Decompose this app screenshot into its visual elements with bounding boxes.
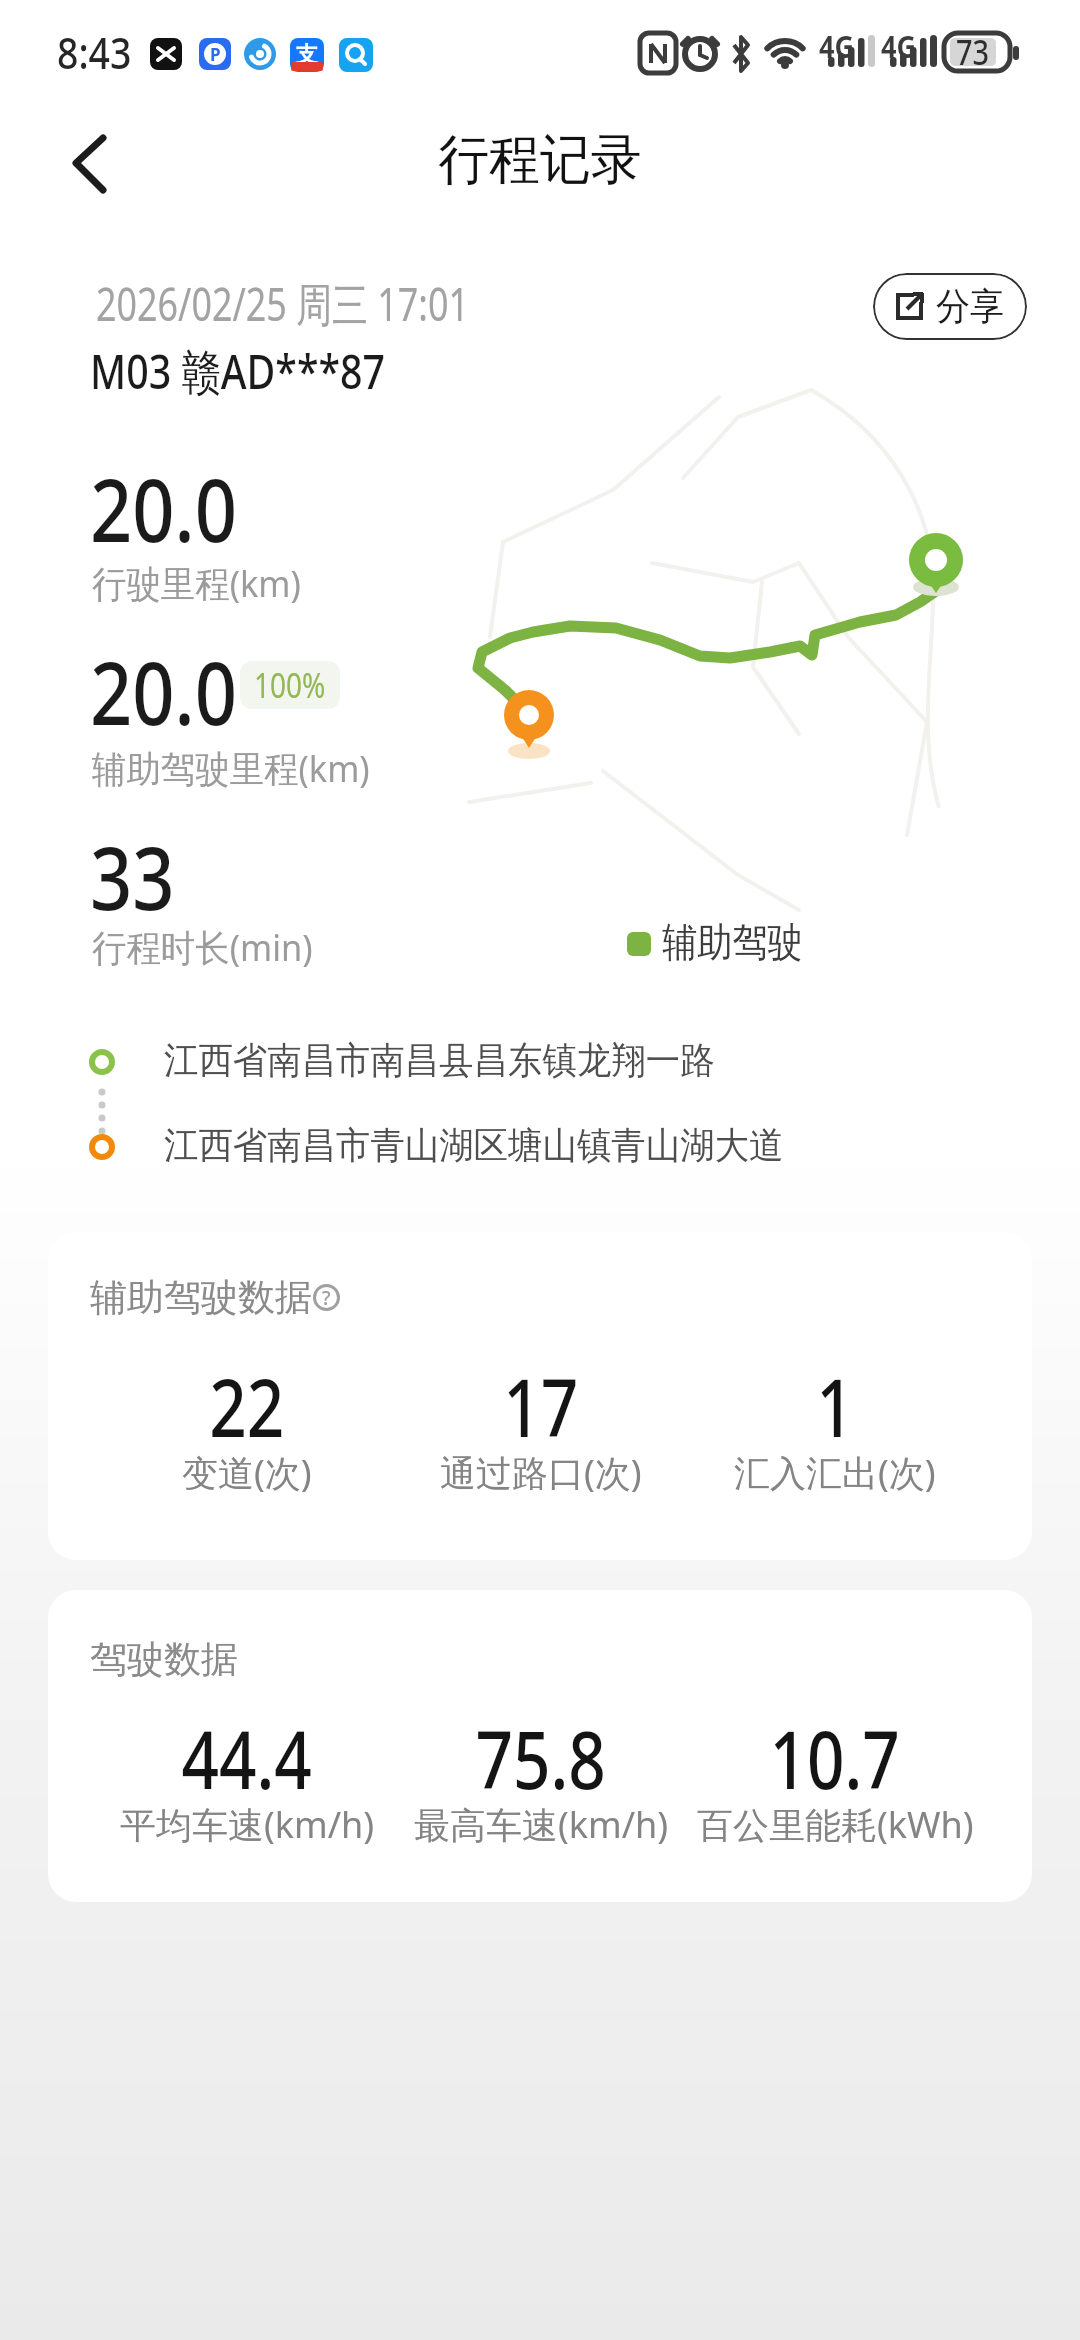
- staticText: 4G: [819, 26, 854, 67]
- staticText: ?: [322, 1285, 331, 1311]
- staticText: 8:43: [57, 22, 132, 82]
- staticText: 最高车速(km/h): [414, 1800, 669, 1849]
- staticText: 平均车速(km/h): [120, 1800, 375, 1849]
- staticText: M03 赣AD***87: [90, 338, 385, 404]
- staticText: 江西省南昌市南昌县昌东镇龙翔一路: [164, 1037, 715, 1084]
- button[interactable]: 分享: [873, 273, 1027, 340]
- staticText: 辅助驾驶数据: [90, 1274, 312, 1321]
- staticText: 变道(次): [182, 1448, 312, 1497]
- staticText: 2026/02/25 周三 17:01: [96, 272, 470, 335]
- staticText: 行驶里程(km): [92, 557, 301, 608]
- staticText: 行程时长(min): [92, 921, 313, 972]
- staticText: 10.7: [769, 1703, 901, 1812]
- staticText: 汇入汇出(次): [734, 1448, 936, 1497]
- staticText: 4G: [881, 26, 916, 67]
- staticText: 17: [503, 1351, 579, 1460]
- staticText: 支: [296, 41, 318, 69]
- staticText: 73: [956, 29, 989, 75]
- button[interactable]: 驾驶数据: [48, 1590, 1032, 1902]
- staticText: 辅助驾驶里程(km): [92, 742, 370, 793]
- button[interactable]: 辅助驾驶数据: [48, 1232, 1032, 1560]
- staticText: P: [210, 43, 221, 65]
- staticText: 1: [816, 1351, 854, 1460]
- staticText: 驾驶数据: [90, 1636, 238, 1683]
- staticText: 行程记录: [438, 126, 641, 194]
- staticText: 100%: [254, 661, 326, 709]
- staticText: 百公里能耗(kWh): [697, 1800, 974, 1849]
- staticText: 江西省南昌市青山湖区塘山镇青山湖大道: [164, 1122, 783, 1169]
- staticText: 33: [90, 816, 175, 936]
- staticText: 通过路口(次): [440, 1448, 642, 1497]
- staticText: 20.0: [90, 448, 237, 568]
- staticText: 辅助驾驶: [662, 917, 803, 967]
- staticText: 75.8: [475, 1703, 607, 1812]
- staticText: 20.0: [90, 631, 237, 751]
- staticText: 44.4: [181, 1703, 313, 1812]
- staticText: 分享: [936, 283, 1004, 330]
- staticText: 22: [209, 1351, 285, 1460]
